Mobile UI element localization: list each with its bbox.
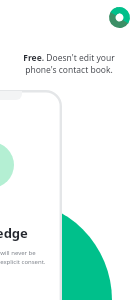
button[interactable]: App logo xyxy=(109,7,130,28)
staticText: Contacts which will never be shared with… xyxy=(0,249,46,265)
staticText: Our Pledge xyxy=(0,224,28,242)
staticText: Free. Doesn't edit your phone's contact … xyxy=(13,52,125,76)
